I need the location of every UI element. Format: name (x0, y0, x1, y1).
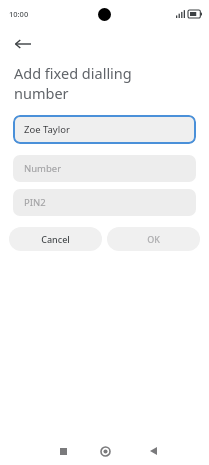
staticText: OK (147, 233, 160, 245)
button[interactable]: Recent apps (51, 439, 75, 463)
button[interactable]: OK (107, 227, 200, 251)
button[interactable]: Back (8, 29, 38, 59)
staticText: PIN2 (24, 196, 46, 209)
staticText: Number (24, 162, 62, 175)
button[interactable]: PIN2 (13, 189, 196, 216)
button[interactable]: Back (141, 439, 165, 463)
staticText: Zoe Taylor (24, 123, 70, 136)
staticText: 10:00 (9, 9, 29, 19)
button[interactable]: Cancel (9, 227, 102, 251)
button[interactable]: Number (13, 155, 196, 182)
staticText: Add fixed dialling number (14, 63, 132, 103)
button[interactable]: Zoe Taylor (13, 115, 196, 144)
button[interactable]: Home (93, 439, 117, 463)
staticText: Cancel (41, 233, 70, 245)
